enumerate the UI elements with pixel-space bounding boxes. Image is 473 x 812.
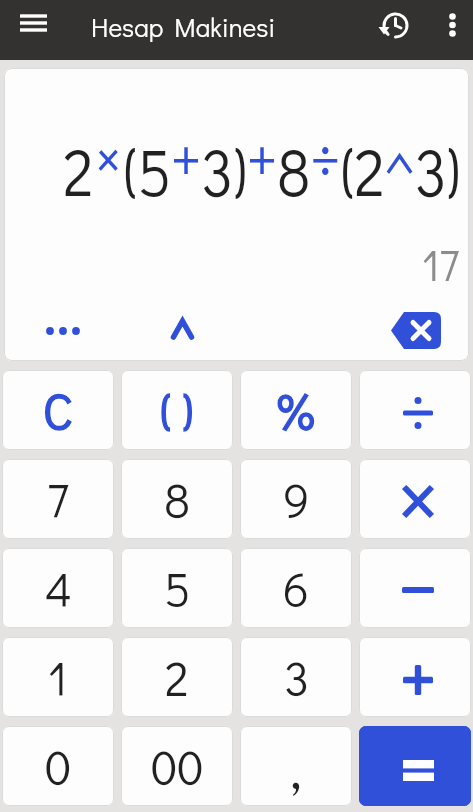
button[interactable]: 9 [240,459,352,539]
staticText: 8 [164,468,191,530]
button[interactable] [359,726,471,806]
button[interactable]: 6 [240,548,352,628]
button[interactable] [359,548,471,628]
button[interactable]: 0 [2,726,114,806]
button[interactable]: , [240,726,352,806]
staticText: 7 [47,468,69,530]
staticText: 17 [422,236,460,292]
staticText: 2 [165,646,189,708]
staticText: 2×(5+3)+8÷(2^3) [63,112,461,214]
staticText: 0 [45,735,72,797]
staticText: ( ) [160,379,194,442]
button[interactable] [359,370,471,450]
staticText: % [277,377,315,444]
button[interactable]: % [240,370,352,450]
button[interactable]: 1 [2,637,114,717]
button[interactable]: 2 [121,637,233,717]
staticText: 1 [48,646,68,708]
button[interactable] [160,308,204,350]
button[interactable]: C [2,370,114,450]
staticText: 4 [45,557,72,619]
button[interactable] [31,313,95,349]
button[interactable]: ( ) [121,370,233,450]
button[interactable] [432,2,472,48]
button[interactable] [10,2,56,44]
staticText: C [43,378,73,442]
staticText: 6 [283,557,309,619]
button[interactable] [359,637,471,717]
button[interactable]: 4 [2,548,114,628]
staticText: 5 [164,557,191,619]
button[interactable]: 00 [121,726,233,806]
staticText: 3 [284,646,309,708]
button[interactable]: 3 [240,637,352,717]
button[interactable]: 8 [121,459,233,539]
staticText: , [290,728,302,804]
staticText: Hesap Makinesi [91,10,276,44]
staticText: 00 [151,735,204,797]
button[interactable]: 7 [2,459,114,539]
button[interactable]: 5 [121,548,233,628]
button[interactable] [371,2,417,48]
staticText: 9 [283,468,310,530]
button[interactable] [384,306,448,354]
button[interactable] [359,459,471,539]
